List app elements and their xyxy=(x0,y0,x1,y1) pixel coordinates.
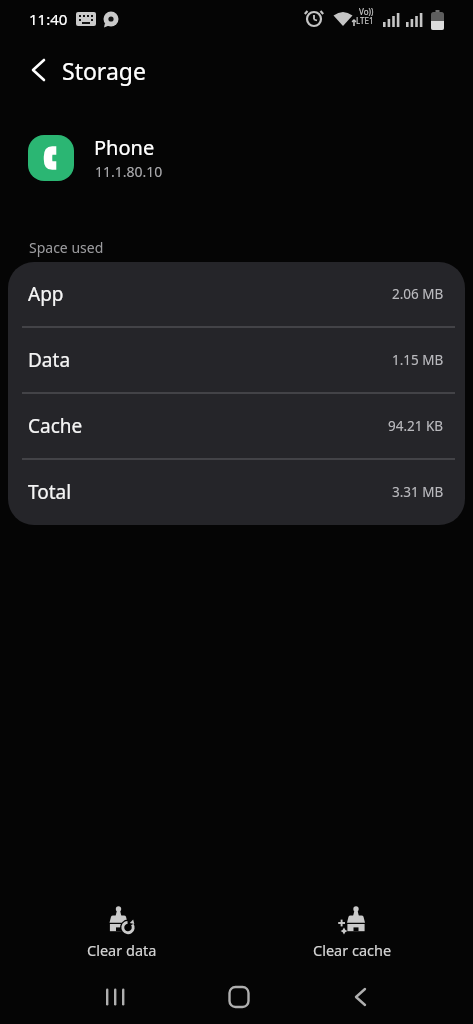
button[interactable]: Data xyxy=(8,328,465,392)
button[interactable] xyxy=(340,977,380,1017)
staticText: 11.1.80.10 xyxy=(95,162,163,181)
button[interactable]: Total xyxy=(8,460,465,524)
staticText: Phone xyxy=(94,134,155,161)
staticText: Clear data xyxy=(87,940,157,960)
staticText: Data xyxy=(28,347,71,373)
button[interactable] xyxy=(18,52,58,88)
button[interactable]: Cache xyxy=(8,394,465,458)
button[interactable]: Clear cache xyxy=(297,906,407,962)
staticText: 94.21 KB xyxy=(388,417,444,435)
staticText: Storage xyxy=(62,55,146,86)
staticText: Total xyxy=(28,479,72,505)
staticText: Space used xyxy=(29,238,104,257)
button[interactable]: Clear data xyxy=(67,906,177,962)
staticText: Cache xyxy=(28,413,83,439)
staticText: App xyxy=(28,281,64,307)
button[interactable] xyxy=(219,977,259,1017)
staticText: 2.06 MB xyxy=(392,285,444,303)
staticText: Vo)) xyxy=(359,6,374,17)
staticText: 1.15 MB xyxy=(392,351,444,369)
staticText: 11:40 xyxy=(29,9,68,29)
staticText: Clear cache xyxy=(313,940,392,960)
button[interactable] xyxy=(95,977,135,1017)
staticText: LTE1 xyxy=(356,15,374,26)
staticText: 3.31 MB xyxy=(392,483,444,501)
button[interactable]: App xyxy=(8,262,465,326)
